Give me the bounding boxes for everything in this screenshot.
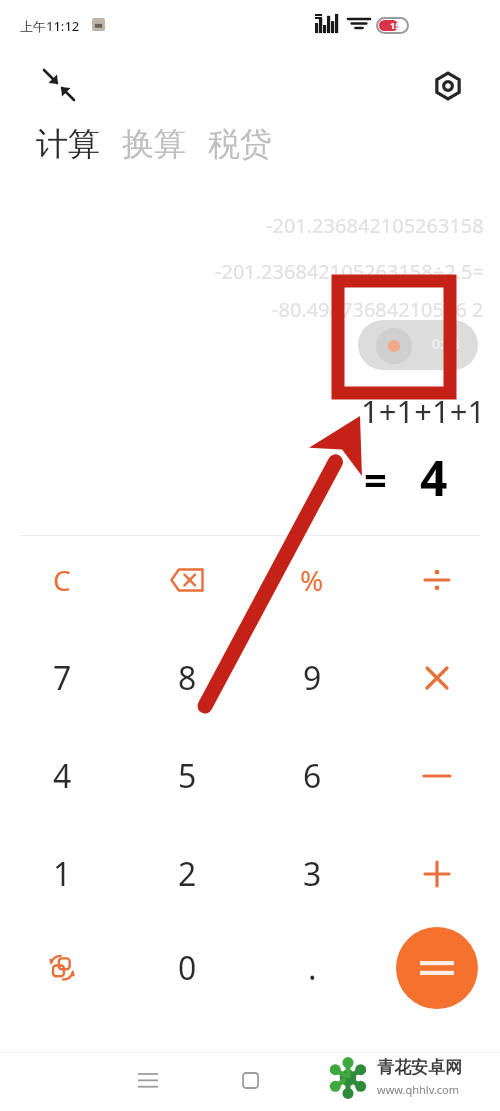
button[interactable]: Plus bbox=[387, 834, 487, 914]
staticText: www.qhhlv.com bbox=[377, 1082, 459, 1097]
button[interactable]: . bbox=[262, 928, 362, 1008]
button[interactable]: Divide bbox=[387, 540, 487, 620]
button[interactable]: 4 bbox=[12, 736, 112, 816]
button[interactable]: 7 bbox=[12, 638, 112, 718]
staticText: 9 bbox=[303, 656, 322, 700]
staticText: 0 bbox=[178, 946, 197, 990]
button[interactable]: 3 bbox=[262, 834, 362, 914]
button[interactable]: 1 bbox=[12, 834, 112, 914]
staticText: 0:18 bbox=[432, 334, 460, 353]
staticText: 2 bbox=[178, 852, 197, 896]
button[interactable]: 换算 bbox=[120, 122, 188, 166]
button[interactable]: Home bbox=[225, 1055, 275, 1105]
button[interactable]: 8 bbox=[137, 638, 237, 718]
staticText: C bbox=[53, 561, 71, 599]
staticText: 1+1+1+1 bbox=[361, 390, 486, 432]
staticText: -201.236842105263158 bbox=[266, 212, 484, 239]
button[interactable]: C bbox=[12, 540, 112, 620]
staticText: 税贷 bbox=[208, 124, 272, 164]
button[interactable]: Recents bbox=[123, 1055, 173, 1105]
staticText: 7 bbox=[53, 656, 72, 700]
button[interactable]: Collapse bbox=[36, 62, 80, 106]
staticText: 3 bbox=[303, 852, 322, 896]
staticText: . bbox=[308, 946, 317, 990]
staticText: 1 bbox=[53, 852, 72, 896]
button[interactable]: Settings bbox=[424, 62, 472, 110]
staticText: % bbox=[300, 561, 324, 599]
staticText: 计算 bbox=[36, 124, 100, 164]
button[interactable]: 2 bbox=[137, 834, 237, 914]
button[interactable]: 税贷 bbox=[206, 122, 274, 166]
staticText: 青花安卓网 bbox=[377, 1057, 462, 1078]
button[interactable]: 计算 bbox=[34, 122, 102, 166]
button[interactable]: 9 bbox=[262, 638, 362, 718]
button[interactable]: 5 bbox=[137, 736, 237, 816]
staticText: 4 bbox=[420, 445, 448, 510]
button[interactable]: Minus bbox=[387, 736, 487, 816]
button[interactable]: Backspace bbox=[137, 540, 237, 620]
staticText: 换算 bbox=[122, 124, 186, 164]
staticText: 5 bbox=[178, 754, 197, 798]
button[interactable]: Multiply bbox=[387, 638, 487, 718]
staticText: 上午11:12 bbox=[20, 17, 80, 35]
staticText: 4 bbox=[53, 754, 72, 798]
button[interactable]: 6 bbox=[262, 736, 362, 816]
button[interactable]: Equals bbox=[396, 927, 478, 1009]
staticText: 8 bbox=[178, 656, 197, 700]
button[interactable]: 0 bbox=[137, 928, 237, 1008]
staticText: 15 bbox=[390, 19, 401, 31]
button[interactable]: Convert bbox=[12, 928, 112, 1008]
staticText: -201.236842105263158÷2.5= bbox=[215, 258, 484, 285]
staticText: -80.49473684210526 2 bbox=[272, 296, 484, 323]
button[interactable]: % bbox=[262, 540, 362, 620]
staticText: 6 bbox=[303, 754, 322, 798]
staticText: = bbox=[364, 452, 387, 506]
